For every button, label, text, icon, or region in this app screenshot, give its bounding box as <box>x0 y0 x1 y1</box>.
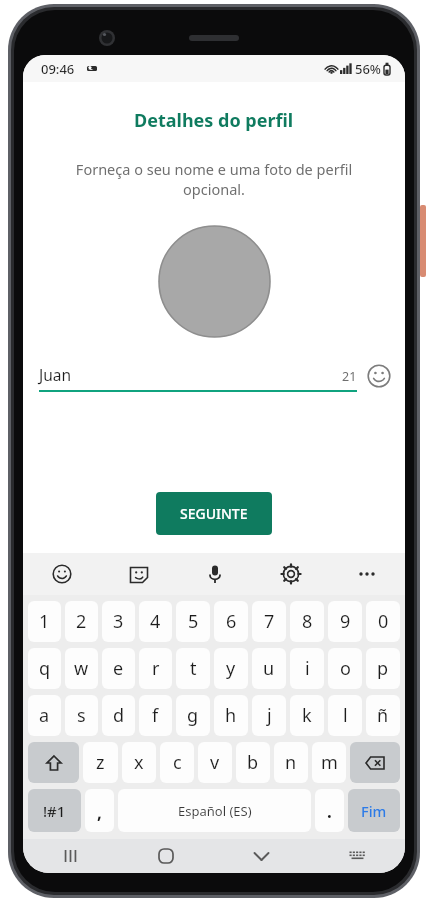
button[interactable]: 5 <box>176 601 210 642</box>
staticText: 6 <box>226 609 237 634</box>
button[interactable]: Stickers <box>100 553 177 595</box>
button[interactable]: Voz <box>177 553 253 595</box>
staticText: n <box>285 750 297 775</box>
button[interactable]: Início <box>118 839 213 873</box>
button[interactable]: g <box>176 695 210 736</box>
button[interactable]: 1 <box>28 601 61 642</box>
staticText: c <box>173 750 182 775</box>
button[interactable]: 9 <box>328 601 362 642</box>
staticText: l <box>343 703 348 728</box>
button[interactable]: o <box>328 648 362 689</box>
button[interactable]: 2 <box>65 601 98 642</box>
button[interactable]: Fim <box>348 789 400 832</box>
button[interactable]: w <box>65 648 98 689</box>
staticText: 56% <box>355 60 381 78</box>
button[interactable]: ñ <box>366 695 400 736</box>
button[interactable]: 0 <box>366 601 400 642</box>
button[interactable]: 6 <box>214 601 248 642</box>
staticText: d <box>113 703 125 728</box>
staticText: 8 <box>302 609 313 634</box>
button[interactable]: c <box>160 742 194 783</box>
button[interactable]: , <box>85 789 114 832</box>
button[interactable]: q <box>28 648 61 689</box>
button[interactable]: b <box>236 742 270 783</box>
staticText: 3 <box>113 609 124 634</box>
staticText: o <box>340 656 351 681</box>
staticText: r <box>152 656 160 681</box>
button[interactable]: Adicionar foto de perfil <box>158 225 271 338</box>
button[interactable]: d <box>102 695 135 736</box>
button[interactable]: u <box>252 648 286 689</box>
button[interactable]: z <box>83 742 118 783</box>
staticText: ñ <box>377 703 389 728</box>
staticText: e <box>113 656 124 681</box>
staticText: b <box>247 750 259 775</box>
staticText: y <box>226 656 236 681</box>
staticText: m <box>321 750 338 775</box>
staticText: Detalhes do perfil <box>134 108 294 133</box>
staticText: 5 <box>188 609 199 634</box>
button[interactable]: Shift <box>28 742 79 783</box>
button[interactable]: Emoji <box>367 364 391 388</box>
staticText: 1 <box>39 609 50 634</box>
button[interactable]: Voltar <box>213 839 309 873</box>
button[interactable]: k <box>290 695 324 736</box>
button[interactable]: SEGUINTE <box>156 492 272 535</box>
button[interactable]: 4 <box>139 601 172 642</box>
button[interactable]: s <box>65 695 98 736</box>
staticText: u <box>263 656 275 681</box>
button[interactable]: x <box>122 742 156 783</box>
button[interactable]: h <box>214 695 248 736</box>
staticText: 21 <box>342 368 357 385</box>
staticText: z <box>96 750 105 775</box>
staticText: Forneça o seu nome e uma foto de perfil … <box>45 159 383 199</box>
button[interactable]: Definições <box>253 553 329 595</box>
button[interactable]: !#1 <box>28 789 81 832</box>
button[interactable]: . <box>315 789 344 832</box>
button[interactable]: Español (ES) <box>118 789 311 832</box>
staticText: j <box>267 703 272 728</box>
staticText: p <box>377 656 389 681</box>
button[interactable]: y <box>214 648 248 689</box>
button[interactable]: a <box>28 695 61 736</box>
staticText: f <box>152 703 159 728</box>
button[interactable]: j <box>252 695 286 736</box>
button[interactable]: Emoji <box>23 553 100 595</box>
staticText: h <box>225 703 237 728</box>
button[interactable]: 3 <box>102 601 135 642</box>
staticText: 7 <box>264 609 275 634</box>
staticText: Juan <box>39 364 72 385</box>
staticText: k <box>302 703 312 728</box>
staticText: w <box>74 656 89 681</box>
staticText: SEGUINTE <box>180 504 248 523</box>
button[interactable]: l <box>328 695 362 736</box>
staticText: 0 <box>378 609 389 634</box>
button[interactable]: Backspace <box>350 742 400 783</box>
button[interactable]: i <box>290 648 324 689</box>
staticText: Fim <box>361 801 387 821</box>
button[interactable]: m <box>312 742 346 783</box>
button[interactable]: Mais <box>329 553 405 595</box>
staticText: x <box>134 750 144 775</box>
button[interactable]: Juan <box>39 364 357 392</box>
staticText: 9 <box>340 609 351 634</box>
button[interactable]: r <box>139 648 172 689</box>
button[interactable]: 7 <box>252 601 286 642</box>
staticText: 4 <box>150 609 161 634</box>
staticText: v <box>210 750 220 775</box>
button[interactable]: Teclado <box>309 839 405 873</box>
button[interactable]: t <box>176 648 210 689</box>
button[interactable]: 8 <box>290 601 324 642</box>
button[interactable]: e <box>102 648 135 689</box>
button[interactable]: v <box>198 742 232 783</box>
staticText: i <box>305 656 310 681</box>
staticText: s <box>77 703 86 728</box>
staticText: a <box>39 703 50 728</box>
button[interactable]: p <box>366 648 400 689</box>
staticText: Español (ES) <box>178 802 252 820</box>
button[interactable]: Recentes <box>23 839 118 873</box>
button[interactable]: f <box>139 695 172 736</box>
button[interactable]: n <box>274 742 308 783</box>
staticText: q <box>39 656 51 681</box>
staticText: . <box>327 800 332 823</box>
